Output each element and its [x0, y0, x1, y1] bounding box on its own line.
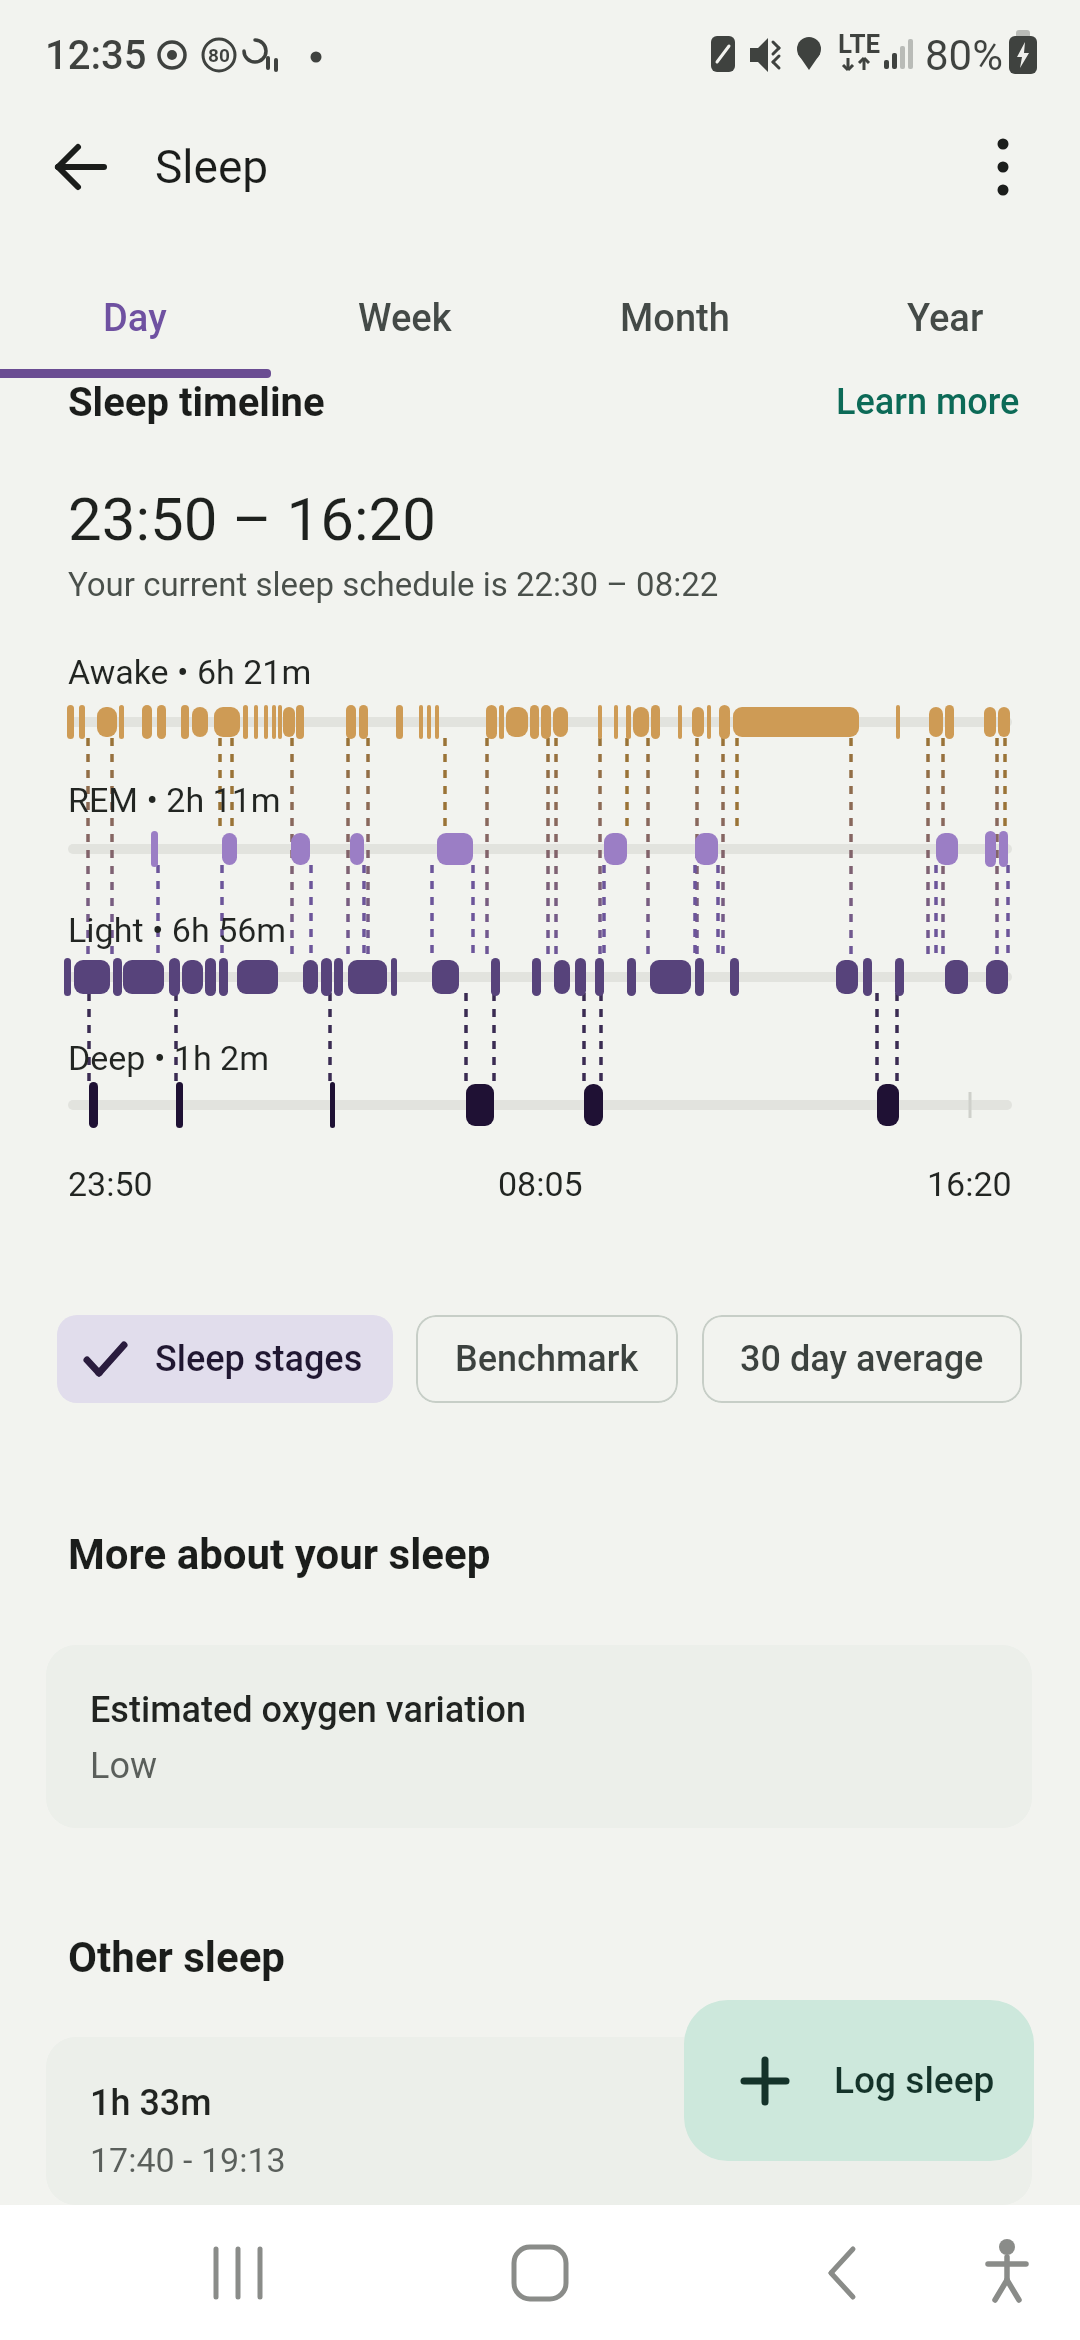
button[interactable]	[971, 135, 1035, 199]
button[interactable]	[780, 2225, 900, 2321]
staticText: 1h 33m	[90, 2082, 212, 2124]
staticText: 16:20	[927, 1164, 1012, 1204]
staticText: Other sleep	[68, 1933, 286, 1982]
staticText: REM • 2h 11m	[68, 780, 281, 820]
staticText: 30 day average	[740, 1338, 984, 1380]
staticText: 80%	[925, 31, 1003, 80]
staticText: 17:40 - 19:13	[90, 2140, 286, 2180]
staticText: More about your sleep	[68, 1530, 491, 1579]
staticText: Low	[90, 1745, 157, 1787]
button[interactable]	[48, 135, 112, 199]
staticText: Learn more	[836, 381, 1020, 423]
staticText: Light • 6h 56m	[68, 910, 287, 950]
button[interactable]: 30 day average	[702, 1315, 1022, 1403]
button[interactable]	[180, 2225, 300, 2321]
staticText: Week	[358, 296, 452, 341]
staticText: Benchmark	[455, 1338, 639, 1380]
staticText: 23:50 – 16:20	[68, 484, 436, 554]
staticText: Sleep stages	[155, 1338, 363, 1380]
staticText: Day	[103, 296, 167, 341]
button[interactable]: Week	[270, 270, 540, 366]
button[interactable]	[950, 2225, 1070, 2321]
button[interactable]: Year	[810, 270, 1080, 366]
button[interactable]: Month	[540, 270, 810, 366]
button[interactable]	[480, 2225, 600, 2321]
staticText: 08:05	[498, 1164, 583, 1204]
staticText: Deep • 1h 2m	[68, 1038, 269, 1078]
button[interactable]: Benchmark	[416, 1315, 678, 1403]
button[interactable]: Estimated oxygen variation	[46, 1645, 1032, 1828]
staticText: Log sleep	[834, 2059, 995, 2102]
staticText: Estimated oxygen variation	[90, 1689, 526, 1731]
staticText: Month	[620, 296, 730, 341]
staticText: Awake • 6h 21m	[68, 652, 312, 692]
staticText: 80	[208, 44, 230, 66]
staticText: Sleep	[155, 140, 269, 194]
button[interactable]: 1h 33m	[46, 2037, 1032, 2205]
button[interactable]: Log sleep	[684, 2000, 1034, 2161]
staticText: 12:35	[45, 32, 147, 79]
button[interactable]: Sleep stages	[57, 1315, 393, 1403]
staticText: Your current sleep schedule is 22:30 – 0…	[68, 565, 719, 604]
button[interactable]: Day	[0, 270, 270, 366]
staticText: LTE	[838, 29, 881, 59]
staticText: Year	[907, 296, 984, 341]
button[interactable]: Learn more	[808, 362, 1020, 442]
staticText: 23:50	[68, 1164, 153, 1204]
staticText: Sleep timeline	[68, 379, 325, 426]
